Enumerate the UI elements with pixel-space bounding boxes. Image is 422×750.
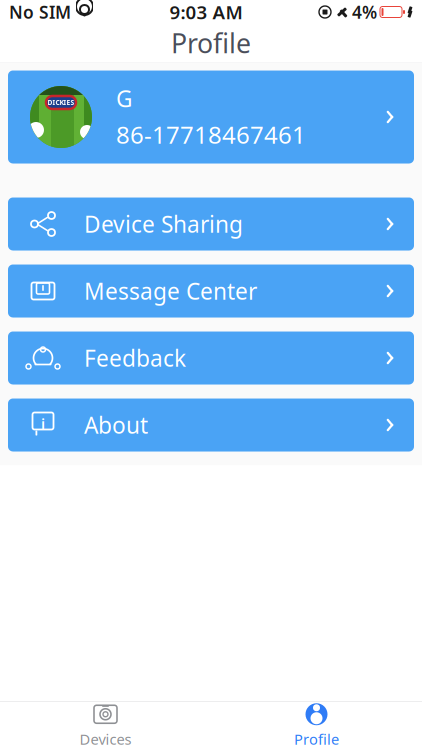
staticText: Feedback (84, 343, 186, 373)
staticText: 9:03 AM (169, 0, 242, 24)
staticText: G (116, 83, 133, 114)
staticText: Device Sharing (84, 209, 243, 239)
button[interactable]: i (8, 398, 414, 451)
button[interactable]: Feedback (8, 331, 414, 384)
staticText: Devices (79, 729, 131, 749)
button[interactable]: Device Sharing (8, 197, 414, 250)
staticText: DICKIES (47, 98, 74, 107)
staticText: Profile (294, 729, 339, 749)
staticText: 4% (352, 0, 377, 23)
staticText: No SIM (9, 0, 71, 23)
staticText: i (41, 414, 45, 433)
button[interactable]: DICKIES (8, 70, 414, 163)
button[interactable]: Devices (0, 702, 211, 750)
staticText: Message Center (84, 276, 257, 306)
staticText: About (84, 410, 148, 440)
button[interactable]: Message Center (8, 264, 414, 317)
staticText: Profile (171, 25, 251, 61)
button[interactable]: Profile (211, 702, 422, 750)
staticText: 86-17718467461 (116, 119, 306, 150)
